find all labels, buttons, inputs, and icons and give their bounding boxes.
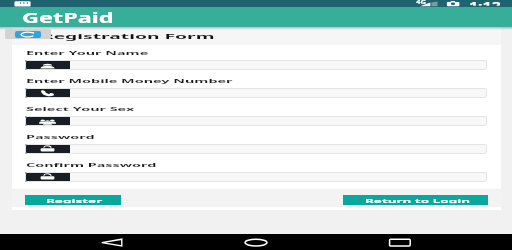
- staticText: Enter Your Name: [26, 49, 149, 56]
- button[interactable]: Rotate screen: [5, 29, 51, 39]
- button[interactable]: Return to Login: [343, 195, 488, 205]
- button[interactable]: [25, 60, 487, 70]
- button[interactable]: [25, 172, 487, 182]
- button[interactable]: Home: [240, 234, 272, 250]
- staticText: Return to Login: [365, 197, 471, 203]
- staticText: Registration Form: [41, 32, 216, 41]
- staticText: 1:12: [469, 0, 501, 6]
- staticText: GetPaid: [22, 8, 114, 25]
- staticText: Password: [26, 133, 95, 140]
- button[interactable]: [25, 116, 487, 126]
- button[interactable]: Recent apps: [384, 234, 416, 250]
- button[interactable]: [25, 88, 487, 98]
- button[interactable]: Register: [25, 195, 121, 205]
- button[interactable]: Back: [96, 234, 128, 250]
- staticText: 4G: [416, 0, 426, 5]
- staticText: Select Your Sex: [26, 105, 135, 112]
- staticText: Confirm Password: [26, 161, 157, 168]
- staticText: Enter Mobile Money Number: [26, 77, 234, 84]
- button[interactable]: [25, 144, 487, 154]
- staticText: Register: [46, 197, 103, 203]
